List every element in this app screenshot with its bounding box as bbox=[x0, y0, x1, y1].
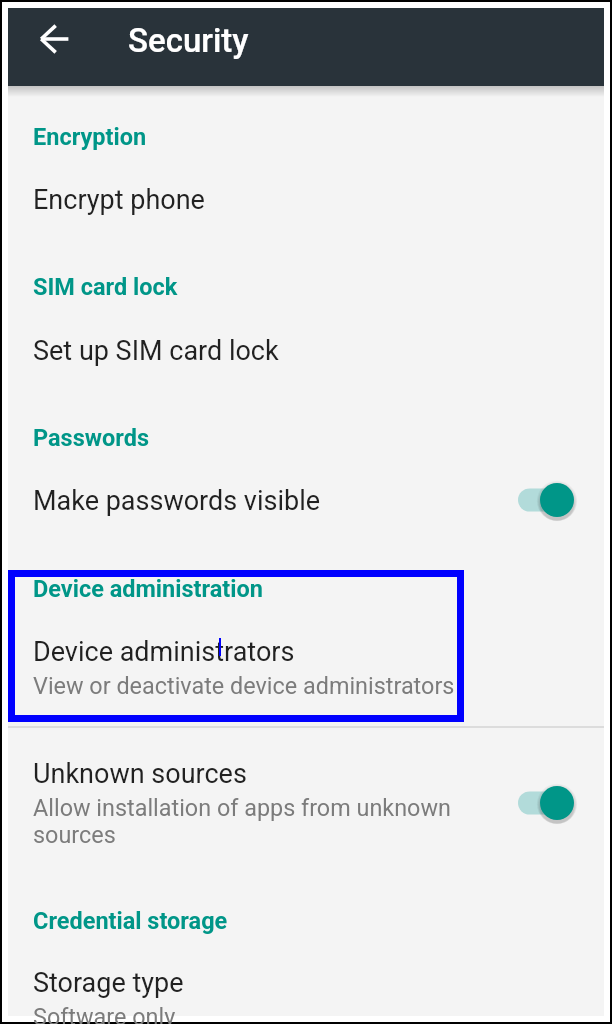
staticText: View or deactivate device administrators bbox=[33, 672, 455, 699]
staticText: Passwords bbox=[33, 424, 149, 452]
button[interactable]: Encrypt phone bbox=[8, 160, 604, 226]
staticText: Security bbox=[128, 21, 249, 60]
staticText: Set up SIM card lock bbox=[33, 335, 279, 367]
button[interactable]: Back bbox=[30, 15, 78, 63]
staticText: Software only bbox=[33, 1003, 176, 1024]
staticText: Unknown sources bbox=[33, 758, 247, 790]
button[interactable]: Storage type bbox=[8, 948, 604, 1016]
staticText: Credential storage bbox=[33, 907, 228, 935]
staticText: Encrypt phone bbox=[33, 184, 205, 216]
button[interactable]: Make passwords visible toggle bbox=[512, 478, 580, 522]
staticText: Device administration bbox=[33, 575, 263, 603]
staticText: Make passwords visible bbox=[33, 485, 321, 517]
staticText: Encryption bbox=[33, 123, 147, 151]
staticText: SIM card lock bbox=[33, 273, 178, 301]
staticText: Device administrators bbox=[33, 636, 295, 668]
button[interactable]: Unknown sources bbox=[8, 748, 604, 858]
button[interactable]: Unknown sources toggle bbox=[512, 781, 580, 825]
button[interactable]: Set up SIM card lock bbox=[8, 311, 604, 377]
button[interactable]: Device administrators bbox=[8, 570, 464, 722]
staticText: Allow installation of apps from unknown … bbox=[33, 794, 473, 848]
staticText: Storage type bbox=[33, 967, 184, 999]
button[interactable]: Make passwords visible bbox=[8, 463, 604, 529]
